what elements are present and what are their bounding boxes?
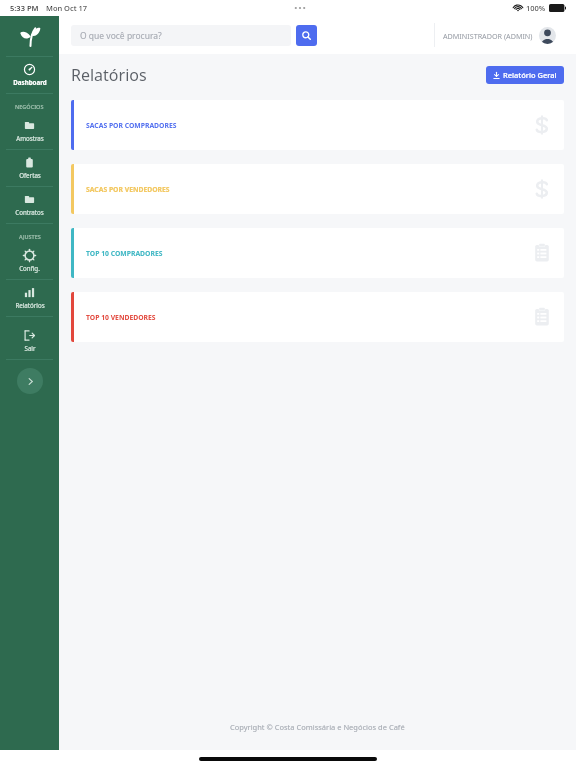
staticText: Mon Oct 17 xyxy=(46,3,88,13)
staticText: O que você procura? xyxy=(80,30,162,42)
staticText: Contratos xyxy=(15,208,44,216)
staticText: Relatórios xyxy=(15,301,45,309)
button[interactable]: SACAS POR VENDEDORES xyxy=(71,164,564,214)
staticText: Ofertas xyxy=(19,171,41,179)
staticText: Relatório Geral xyxy=(503,70,557,80)
button[interactable]: Dashboard xyxy=(0,57,59,93)
staticText: 5:33 PM xyxy=(10,3,39,13)
staticText: TOP 10 COMPRADORES xyxy=(86,249,163,258)
button[interactable]: Expand menu xyxy=(17,368,43,394)
button[interactable]: TOP 10 VENDEDORES xyxy=(71,292,564,342)
staticText: NEGÓCIOS xyxy=(15,103,44,110)
button[interactable]: Amostras xyxy=(0,113,59,149)
staticText: Relatórios xyxy=(71,64,147,86)
button[interactable]: Relatório Geral xyxy=(486,66,564,84)
staticText: Amostras xyxy=(16,134,44,142)
staticText: TOP 10 VENDEDORES xyxy=(86,313,156,322)
button[interactable]: O que você procura? xyxy=(71,25,291,46)
staticText: Config. xyxy=(19,264,40,272)
button[interactable]: Config. xyxy=(0,243,59,279)
button[interactable]: TOP 10 COMPRADORES xyxy=(71,228,564,278)
button[interactable]: Contratos xyxy=(0,187,59,223)
button[interactable]: SACAS POR COMPRADORES xyxy=(71,100,564,150)
button[interactable]: ADMINISTRADOR (ADMIN) xyxy=(435,23,564,48)
button[interactable]: Sair xyxy=(0,323,59,359)
staticText: Sair xyxy=(24,344,36,352)
button[interactable]: Logo xyxy=(0,16,59,56)
staticText: SACAS POR COMPRADORES xyxy=(86,121,177,130)
button[interactable]: Search xyxy=(296,25,317,46)
staticText: Copyright © Costa Comissária e Negócios … xyxy=(230,722,405,732)
staticText: ADMINISTRADOR (ADMIN) xyxy=(443,31,533,41)
staticText: 100% xyxy=(526,3,546,13)
button[interactable]: Ofertas xyxy=(0,150,59,186)
button[interactable]: Relatórios xyxy=(0,280,59,316)
staticText: AJUSTES xyxy=(19,233,41,240)
other: Logo xyxy=(18,24,42,48)
staticText: Dashboard xyxy=(13,78,47,86)
staticText: SACAS POR VENDEDORES xyxy=(86,185,170,194)
